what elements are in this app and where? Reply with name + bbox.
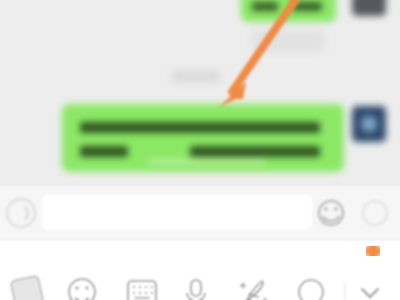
button[interactable]: Sogou keyboard [11,276,43,300]
button[interactable]: Shapes [295,276,327,300]
button[interactable]: Stickers [66,276,98,300]
button[interactable]: More [363,201,387,225]
button[interactable]: Emoji [319,201,343,225]
button[interactable]: Voice input [180,276,212,300]
button[interactable]: Hide keyboard [354,276,386,300]
button[interactable]: Keyboard [126,276,158,300]
button[interactable]: Voice message [7,199,35,227]
button[interactable]: Handwriting [239,276,271,300]
